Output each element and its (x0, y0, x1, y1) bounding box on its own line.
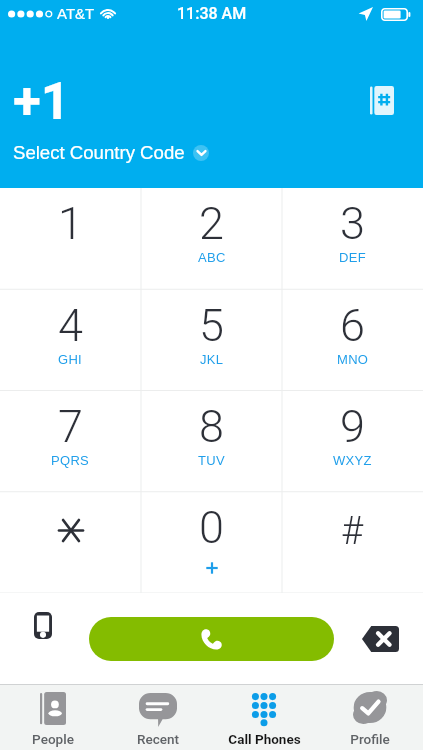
staticText: 0 (199, 501, 224, 554)
staticText: 8 (199, 400, 224, 453)
button[interactable]: # (282, 492, 423, 593)
button[interactable]: Call mobile (23, 605, 63, 645)
staticText: 1 (58, 197, 83, 250)
button[interactable]: 4 (0, 290, 141, 391)
button[interactable]: Select Country Code (13, 140, 215, 165)
staticText: TUV (198, 453, 225, 468)
staticText: 7 (58, 400, 83, 453)
staticText: JKL (200, 352, 224, 367)
button[interactable]: Backspace (360, 619, 399, 659)
staticText: Select Country Code (13, 142, 185, 163)
button[interactable]: 5 (141, 290, 282, 391)
button[interactable] (0, 492, 141, 593)
staticText: Profile (350, 731, 390, 747)
button[interactable]: 2 (141, 188, 282, 290)
button[interactable]: People (0, 685, 105, 750)
staticText: AT&T (57, 5, 95, 22)
staticText: 6 (340, 299, 365, 352)
staticText: 2 (199, 197, 224, 250)
staticText: # (341, 509, 364, 554)
staticText: DEF (339, 250, 366, 265)
button[interactable]: 1 (0, 188, 141, 290)
staticText: PQRS (51, 453, 90, 468)
staticText: +1 (13, 72, 71, 132)
button[interactable]: 0 (141, 492, 282, 593)
button[interactable]: Recent (105, 685, 211, 750)
button[interactable]: 9 (282, 391, 423, 492)
button[interactable]: 6 (282, 290, 423, 391)
staticText: GHI (58, 352, 83, 367)
button[interactable]: 8 (141, 391, 282, 492)
button[interactable]: Dial by name (365, 83, 399, 117)
staticText: 3 (340, 197, 365, 250)
staticText: 9 (340, 400, 365, 453)
button[interactable]: Profile (317, 685, 423, 750)
staticText: Call Phones (228, 731, 301, 747)
staticText: ABC (198, 250, 226, 265)
button[interactable]: 7 (0, 391, 141, 492)
staticText: People (32, 731, 74, 747)
staticText: WXYZ (333, 453, 372, 468)
button[interactable]: Call Phones (211, 685, 317, 750)
staticText: 4 (58, 299, 83, 352)
staticText: 5 (199, 299, 224, 352)
staticText: Recent (137, 731, 179, 747)
staticText: MNO (337, 352, 369, 367)
staticText: 11:38 AM (177, 4, 247, 23)
button[interactable]: 3 (282, 188, 423, 290)
button[interactable]: Call (89, 617, 334, 661)
